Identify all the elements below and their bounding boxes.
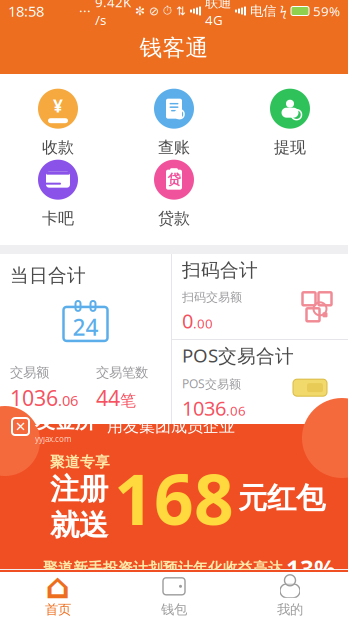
staticText: 用友集团成员企业 [107, 417, 235, 436]
staticText: 24 [72, 312, 98, 342]
staticText: 扫码交易额 [182, 290, 242, 304]
staticText: ¥ [53, 94, 63, 117]
button[interactable]: ✕ [0, 424, 348, 569]
staticText: 电信 [250, 3, 276, 19]
staticText: 1036 [10, 384, 58, 412]
staticText: 59% [313, 2, 340, 20]
staticText: 卡吧 [42, 209, 74, 228]
staticText: 查账 [158, 138, 190, 157]
staticText: 扫码合计 [182, 259, 258, 282]
button[interactable]: 卡吧 [0, 163, 116, 225]
button[interactable]: 贷 [116, 163, 232, 225]
staticText: .06 [58, 391, 78, 410]
staticText: 聚道新手投资计划预计年化收益高达 [43, 559, 283, 577]
staticText: POS交易合计 [182, 343, 294, 368]
staticText: yyjax.com [35, 433, 71, 444]
button[interactable]: 提现 [232, 92, 348, 154]
staticText: 13% [286, 552, 336, 584]
staticText: 收款 [42, 138, 74, 157]
staticText: ··· [79, 2, 91, 20]
staticText: ⇅ [176, 4, 186, 18]
staticText: ϟ [280, 3, 287, 19]
staticText: 首页 [45, 601, 71, 618]
staticText: 友金所 [35, 409, 95, 433]
staticText: .00 [193, 315, 213, 332]
staticText: 笔 [120, 391, 136, 411]
staticText: POS交易额 [182, 376, 241, 392]
staticText: 聚道专享 [50, 453, 110, 471]
staticText: ⌂ [45, 567, 70, 606]
button[interactable]: 我的 [232, 572, 348, 620]
staticText: 就送 [50, 507, 108, 543]
staticText: 提现 [274, 138, 306, 157]
staticText: 钱客通 [139, 34, 208, 62]
button[interactable]: 钱包 [116, 572, 232, 620]
staticText: 交易额 [10, 364, 49, 381]
staticText: 钱包 [161, 601, 187, 618]
staticText: ⊘ [149, 4, 159, 18]
staticText: 贷款 [158, 209, 190, 228]
staticText: 元红包 [238, 480, 325, 516]
button[interactable]: ¥ [0, 92, 116, 154]
staticText: 联通 4G [205, 0, 231, 29]
staticText: ✕ [15, 419, 26, 434]
staticText: 交易笔数 [96, 364, 148, 381]
staticText: 168 [114, 452, 234, 544]
staticText: 9.42K/s [95, 0, 131, 29]
staticText: 0 [182, 308, 193, 334]
button[interactable]: ⌂ [0, 572, 116, 620]
staticText: 44 [96, 384, 120, 412]
button[interactable]: 查账 [116, 92, 232, 154]
staticText: ⏱ [163, 5, 172, 17]
staticText: 当日合计 [10, 264, 86, 287]
staticText: 注册 [50, 471, 108, 507]
staticText: 18:58 [8, 1, 44, 21]
staticText: .06 [226, 402, 246, 419]
staticText: 1036 [182, 395, 226, 421]
staticText: ✼ [135, 4, 145, 18]
staticText: 贷 [167, 171, 180, 188]
staticText: 我的 [277, 601, 303, 618]
